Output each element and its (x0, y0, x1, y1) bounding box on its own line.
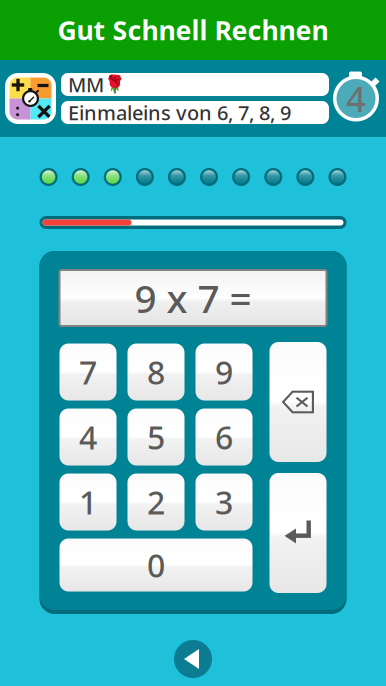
staticText: 🌹 (104, 75, 126, 94)
staticText: MM (68, 71, 104, 98)
button[interactable]: 5 (127, 408, 184, 465)
button[interactable]: 3 (195, 473, 252, 530)
staticText: 7 (79, 351, 97, 393)
button[interactable]: Delete (269, 342, 326, 462)
staticText: 6 (215, 416, 233, 458)
button[interactable]: 1 (59, 473, 116, 530)
staticText: 1 (79, 481, 97, 523)
staticText: 4 (79, 416, 97, 458)
button[interactable]: Back (168, 634, 218, 684)
button[interactable]: 0 (59, 538, 252, 591)
staticText: 0 (147, 544, 165, 586)
staticText: 5 (147, 416, 165, 458)
button[interactable]: Enter (269, 473, 326, 593)
staticText: 8 (147, 351, 165, 393)
staticText: 3 (215, 481, 233, 523)
button[interactable]: 2 (127, 473, 184, 530)
staticText: Gut Schnell Rechnen (57, 12, 328, 48)
button[interactable]: 7 (59, 343, 116, 400)
button[interactable]: 6 (195, 408, 252, 465)
button[interactable]: 9 (195, 343, 252, 400)
staticText: 2 (147, 481, 165, 523)
button[interactable]: 4 (59, 408, 116, 465)
staticText: 9 (215, 351, 233, 393)
button[interactable]: 8 (127, 343, 184, 400)
staticText: 4 (346, 75, 366, 121)
staticText: 9 x 7 = (134, 272, 251, 324)
staticText: Einmaleins von 6, 7, 8, 9 (68, 99, 291, 126)
